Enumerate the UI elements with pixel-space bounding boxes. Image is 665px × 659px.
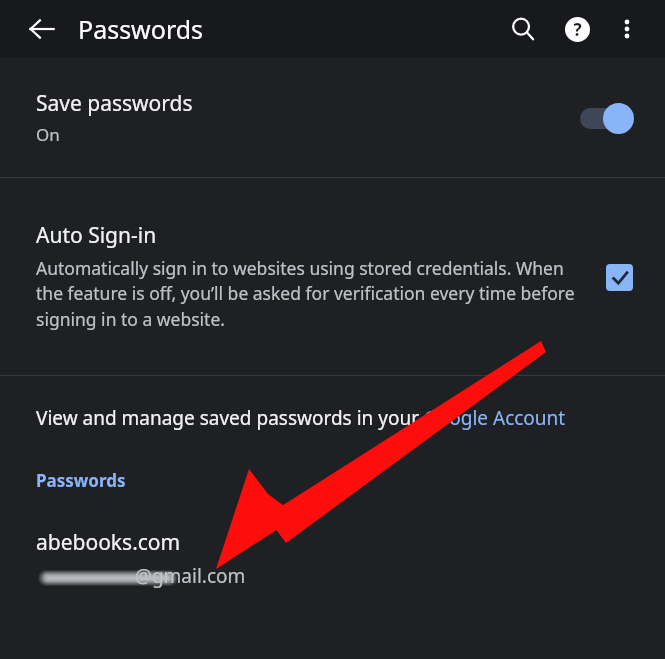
staticText: Automatically sign in to websites using … (36, 256, 587, 332)
staticText: @gmail.com (36, 563, 246, 589)
button[interactable]: Auto Sign-in checkbox (599, 257, 639, 297)
button[interactable]: More options (603, 5, 651, 53)
staticText: View and manage saved passwords in your … (36, 405, 566, 431)
staticText: abebooks.com (36, 528, 181, 557)
button[interactable]: Save passwords (0, 58, 665, 177)
button[interactable]: Search (499, 5, 547, 53)
staticText: Passwords (36, 469, 126, 492)
staticText: On (36, 123, 60, 146)
staticText: Auto Sign-in (36, 221, 157, 250)
button[interactable]: Auto Sign-in (0, 178, 665, 375)
staticText: ? (573, 18, 582, 41)
button[interactable]: abebooks.com (0, 528, 665, 589)
staticText: Save passwords (36, 89, 193, 118)
staticText: Passwords (78, 12, 204, 46)
button[interactable]: View and manage saved passwords in your … (0, 376, 665, 441)
button[interactable]: Help (553, 5, 601, 53)
button[interactable]: Back (18, 5, 66, 53)
